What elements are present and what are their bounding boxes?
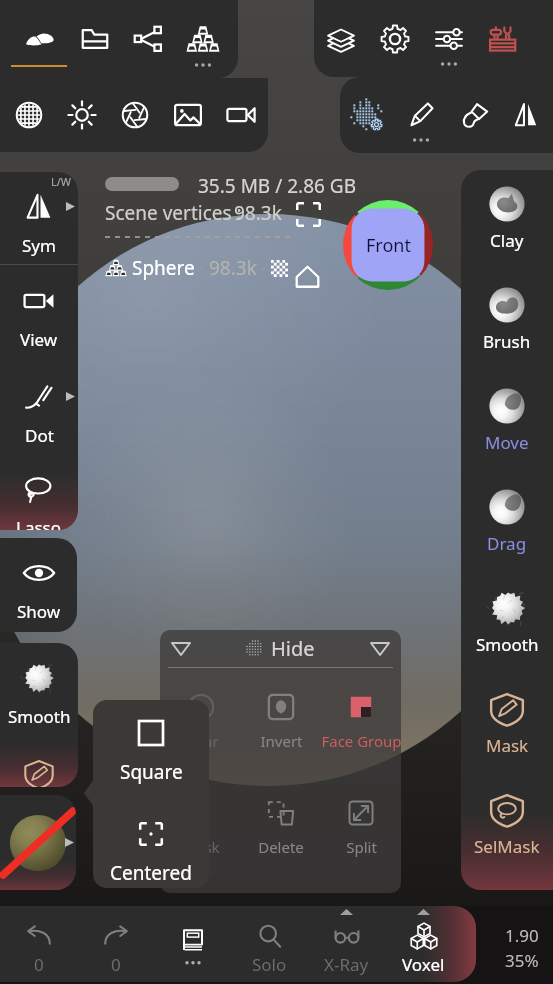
staticText: L/W — [51, 174, 72, 189]
other: Camera — [224, 98, 258, 132]
staticText: Clear — [182, 731, 219, 751]
staticText: Mask — [486, 734, 529, 757]
other: Share — [132, 22, 166, 56]
staticText: X-Ray — [324, 953, 369, 976]
button[interactable]: Move — [461, 372, 553, 473]
other: Solo — [255, 921, 285, 951]
staticText: 98.3k — [234, 200, 282, 226]
button[interactable]: Undo — [0, 906, 77, 982]
button[interactable]: Material — [0, 795, 76, 890]
button[interactable]: Brush — [448, 77, 502, 153]
button[interactable]: Camera — [214, 78, 267, 152]
button[interactable]: Split — [321, 797, 401, 857]
staticText: Square — [120, 759, 183, 785]
button[interactable]: Settings — [368, 0, 422, 77]
staticText: 1.90 — [505, 924, 539, 947]
button[interactable]: Lasso — [0, 454, 78, 530]
button[interactable]: Sym — [0, 172, 78, 268]
button[interactable]: X-Ray — [308, 906, 385, 982]
staticText: Voxel — [402, 953, 445, 976]
button[interactable]: View — [0, 266, 78, 362]
other: Redo — [101, 921, 131, 951]
staticText: Lasso — [16, 516, 62, 530]
staticText: Move — [485, 431, 529, 454]
button[interactable]: Stroke — [340, 77, 394, 153]
button[interactable]: Centered — [136, 819, 166, 849]
other: Settings — [378, 22, 412, 56]
staticText: 98.3k — [209, 255, 257, 281]
button[interactable]: Voxel — [385, 906, 462, 982]
other: Files — [78, 22, 112, 56]
button[interactable]: Clay — [461, 170, 553, 271]
button[interactable]: Mirror — [502, 77, 549, 153]
other: Fit view — [296, 202, 321, 227]
button[interactable]: Sliders — [422, 0, 476, 77]
button[interactable]: Invert — [241, 691, 321, 751]
other: Topology — [178, 926, 208, 956]
other: Undo — [24, 921, 54, 951]
other: Brush — [458, 98, 492, 132]
button[interactable]: Orientation gizmo — [343, 200, 433, 290]
button[interactable]: Mask — [0, 739, 78, 787]
other: Square — [136, 718, 166, 748]
other: Collapse — [172, 643, 190, 655]
button[interactable]: Tools — [476, 0, 530, 77]
staticText: Delete — [258, 837, 304, 857]
button[interactable]: Matcap — [2, 78, 55, 152]
button[interactable]: Files — [67, 0, 122, 78]
other: Expand — [371, 643, 389, 655]
other: X-Ray — [332, 921, 362, 951]
staticText: SelMask — [474, 835, 540, 858]
staticText: Centered — [110, 860, 192, 886]
button[interactable]: Smooth — [0, 643, 78, 739]
staticText: Hide — [271, 635, 315, 662]
button[interactable]: Primitives — [176, 0, 230, 78]
other: Orientation gizmo — [343, 200, 433, 290]
staticText: Smooth — [8, 705, 71, 728]
other: Stroke — [350, 98, 384, 132]
button[interactable]: Post process — [108, 78, 161, 152]
button[interactable]: Delete — [241, 797, 321, 857]
button[interactable]: SelMask — [461, 776, 553, 877]
staticText: View — [20, 328, 58, 351]
button[interactable]: Topology — [154, 906, 231, 982]
staticText: Brush — [483, 330, 531, 353]
staticText: Mask — [182, 837, 220, 857]
button[interactable]: Show — [0, 538, 77, 632]
other: Background — [171, 98, 205, 132]
other: Material — [0, 805, 76, 881]
button[interactable]: Mask — [160, 797, 241, 857]
staticText: 0 — [111, 953, 121, 976]
other: Sculpt — [22, 22, 56, 56]
other: Layers — [324, 22, 358, 56]
button[interactable]: Smooth — [461, 574, 553, 675]
staticText: Sphere — [132, 255, 195, 281]
button[interactable]: Share — [122, 0, 176, 78]
button[interactable]: Square — [136, 718, 166, 748]
staticText: 35% — [505, 949, 539, 972]
button[interactable]: Solo — [231, 906, 308, 982]
other: Primitives — [186, 22, 220, 56]
staticText: Front — [366, 233, 411, 258]
other: Post process — [118, 98, 152, 132]
button[interactable]: Sculpt — [10, 0, 67, 78]
button[interactable]: Sphere — [105, 255, 288, 281]
button[interactable]: Brush — [461, 271, 553, 372]
staticText: Smooth — [476, 633, 539, 656]
button[interactable]: Redo — [77, 906, 154, 982]
button[interactable]: Background — [161, 78, 214, 152]
staticText: Sym — [22, 234, 56, 257]
button[interactable]: Alpha — [394, 77, 448, 153]
button[interactable]: Home — [294, 263, 321, 290]
button[interactable]: Drag — [461, 473, 553, 574]
button[interactable]: Layers — [314, 0, 368, 77]
staticText: 0 — [34, 953, 44, 976]
button[interactable]: Mask — [461, 675, 553, 776]
button[interactable]: Dot — [0, 362, 78, 458]
staticText: Invert — [260, 731, 303, 751]
button[interactable]: Clear — [160, 691, 241, 751]
button[interactable]: Lighting — [55, 78, 108, 152]
button[interactable]: Face Group — [321, 691, 401, 751]
other: Matcap — [12, 98, 46, 132]
